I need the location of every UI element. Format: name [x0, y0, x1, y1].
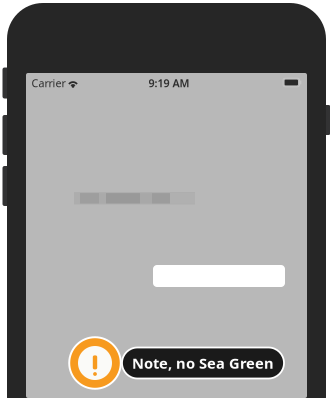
staticText: Carrier [31, 76, 65, 90]
button[interactable]: Text field [153, 265, 285, 287]
button[interactable]: Note, no Sea Green [69, 335, 285, 391]
staticText: Note, no Sea Green [132, 353, 274, 373]
staticText: 9:19 AM [148, 76, 189, 90]
